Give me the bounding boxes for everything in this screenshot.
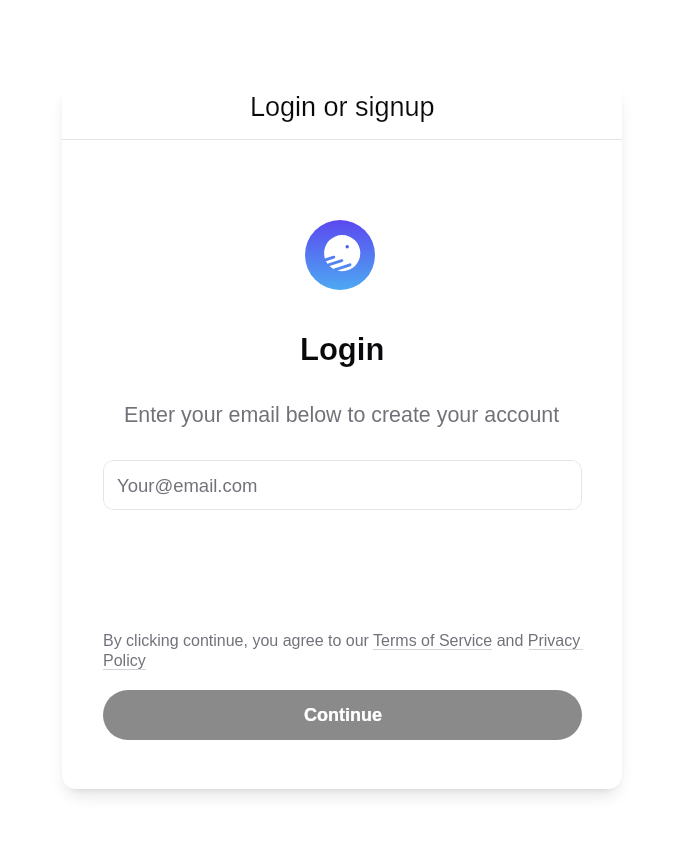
staticText: Your@email.com	[117, 475, 258, 496]
button[interactable]: Your@email.com	[103, 460, 582, 510]
staticText: Login	[300, 332, 385, 367]
staticText: Continue	[304, 705, 382, 725]
staticText: Login or signup	[250, 92, 435, 122]
button[interactable]: Continue	[103, 690, 582, 740]
staticText: Enter your email below to create your ac…	[124, 403, 560, 427]
button[interactable]: Terms of Service	[373, 633, 492, 651]
staticText: By clicking continue, you agree to our T…	[103, 632, 582, 669]
button[interactable]: Privacy Policy	[529, 633, 583, 651]
